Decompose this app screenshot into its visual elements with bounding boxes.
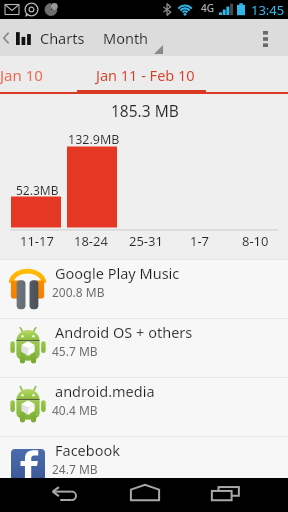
staticText: 1-7 <box>190 232 210 250</box>
staticText: 18-24 <box>74 232 108 250</box>
button[interactable]: Month <box>96 19 168 56</box>
button[interactable]: Charts <box>0 19 92 56</box>
staticText: 132.9MB <box>68 131 120 148</box>
staticText: Charts <box>40 28 85 48</box>
button[interactable]: More options <box>248 19 284 56</box>
staticText: Jan 11 - Feb 10 <box>96 65 195 85</box>
button[interactable]: Google Play Music <box>0 260 288 318</box>
staticText: android.media <box>55 381 155 401</box>
button[interactable]: android.media <box>0 378 288 436</box>
staticText: Month <box>103 28 149 48</box>
button[interactable]: Jan 11 - Feb 10 <box>77 56 206 90</box>
button[interactable]: Home <box>112 478 176 512</box>
staticText: 25-31 <box>129 232 163 250</box>
staticText: 13:45 <box>251 1 285 19</box>
staticText: 11-17 <box>20 232 54 250</box>
staticText: 45.7 MB <box>52 343 98 359</box>
button[interactable]: Jan 10 <box>0 56 77 90</box>
staticText: 8-10 <box>242 232 269 250</box>
staticText: 4G <box>201 1 214 15</box>
staticText: Facebook <box>55 440 121 460</box>
staticText: Google Play Music <box>55 263 180 283</box>
button[interactable]: Facebook <box>0 437 288 495</box>
staticText: Jan 10 <box>0 65 43 85</box>
staticText: Android OS + others <box>55 322 193 342</box>
staticText: 200.8 MB <box>52 284 105 300</box>
staticText: 24.7 MB <box>52 461 98 477</box>
button[interactable]: Android OS + others <box>0 319 288 377</box>
button[interactable]: Recent apps <box>193 478 257 512</box>
staticText: 52.3MB <box>16 182 59 198</box>
staticText: 40.4 MB <box>52 402 98 418</box>
button[interactable]: Back <box>32 478 96 512</box>
staticText: 185.3 MB <box>111 100 179 121</box>
